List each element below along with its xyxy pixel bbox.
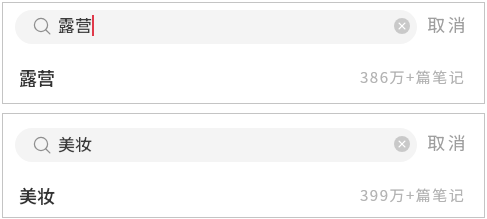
- staticText: 取消: [427, 11, 469, 37]
- button[interactable]: 取消: [418, 7, 478, 41]
- staticText: 取消: [427, 129, 469, 155]
- button[interactable]: Clear search text: [389, 127, 415, 161]
- staticText: 露营: [58, 12, 92, 37]
- button[interactable]: Clear search text: [389, 9, 415, 43]
- staticText: 美妆: [58, 131, 92, 156]
- button[interactable]: [15, 128, 417, 162]
- button[interactable]: 露营: [3, 61, 484, 93]
- button[interactable]: [15, 10, 417, 44]
- staticText: 399万+篇笔记: [360, 184, 466, 206]
- button[interactable]: 美妆: [3, 179, 484, 211]
- staticText: 386万+篇笔记: [360, 66, 466, 88]
- button[interactable]: 取消: [418, 125, 478, 159]
- staticText: 美妆: [19, 182, 55, 208]
- staticText: 露营: [19, 64, 55, 90]
